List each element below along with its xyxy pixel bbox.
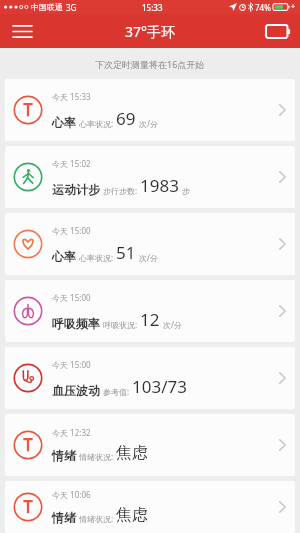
staticText: 心率 — [52, 249, 76, 264]
staticText: 51 — [116, 241, 136, 264]
staticText: 1983 — [140, 174, 179, 197]
button[interactable]: 今天 12:32 — [5, 414, 295, 476]
button[interactable]: 今天 15:00 — [5, 213, 295, 275]
staticText: 今天 15:02 — [52, 158, 91, 169]
button[interactable]: 今天 15:00 — [5, 347, 295, 409]
button[interactable]: 今天 15:33 — [5, 79, 295, 141]
staticText: 情绪状况: — [79, 451, 114, 462]
staticText: 今天 15:33 — [52, 91, 91, 102]
staticText: 3G — [66, 2, 77, 13]
staticText: 今天 10:06 — [52, 489, 91, 500]
staticText: 步 — [182, 186, 190, 196]
staticText: 12 — [140, 308, 160, 331]
staticText: 74% — [255, 2, 271, 13]
staticText: 次/分 — [139, 118, 158, 129]
staticText: 情绪 — [52, 510, 76, 525]
staticText: 焦虑 — [116, 505, 148, 525]
staticText: 中国联通 — [31, 2, 63, 12]
button[interactable]: 今天 10:06 — [5, 481, 295, 533]
staticText: 下次定时测量将在16点开始 — [95, 58, 205, 70]
staticText: 呼吸频率 — [52, 316, 100, 331]
staticText: 心率 — [52, 115, 76, 130]
button[interactable]: 今天 15:02 — [5, 146, 295, 208]
staticText: 心率状况: — [79, 252, 114, 263]
staticText: 103/73 — [132, 375, 187, 398]
staticText: 血压波动 — [52, 383, 100, 398]
staticText: 69 — [116, 107, 136, 130]
staticText: 情绪 — [52, 448, 76, 463]
staticText: 心率状况: — [79, 118, 114, 129]
staticText: 今天 15:00 — [52, 359, 91, 370]
staticText: 焦虑 — [116, 443, 148, 463]
staticText: 今天 15:00 — [52, 225, 91, 236]
staticText: 15:33 — [142, 2, 163, 13]
staticText: 运动计步 — [52, 182, 100, 197]
staticText: 情绪状况: — [79, 513, 114, 524]
button[interactable]: Battery — [256, 14, 300, 48]
staticText: 次/分 — [139, 252, 158, 263]
staticText: 呼吸状况: — [103, 319, 138, 330]
staticText: 参考值: — [103, 386, 130, 397]
staticText: 今天 12:32 — [52, 427, 91, 438]
button[interactable]: Menu — [0, 14, 44, 48]
staticText: 次/分 — [163, 319, 182, 330]
staticText: + — [291, 2, 296, 12]
button[interactable]: 今天 15:00 — [5, 280, 295, 342]
staticText: 37°手环 — [125, 22, 176, 41]
staticText: 步行步数: — [103, 185, 138, 196]
staticText: 今天 15:00 — [52, 292, 91, 303]
